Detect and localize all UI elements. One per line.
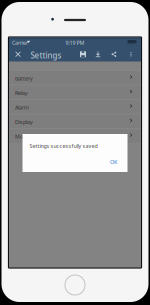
button[interactable]: Close (11, 47, 25, 61)
button[interactable]: Modem (9, 128, 141, 143)
staticText: Carrier (12, 39, 28, 46)
staticText: 9:19 PM (65, 39, 84, 46)
staticText: Display (15, 118, 33, 125)
staticText: Modem (15, 133, 34, 140)
staticText: Settings successfully saved (29, 142, 97, 150)
staticText: Settings (30, 50, 61, 61)
staticText: OK (110, 158, 117, 166)
button[interactable]: Share (107, 47, 121, 61)
staticText: Alarm (15, 104, 29, 111)
button[interactable]: Display (9, 114, 141, 128)
button[interactable]: Alarm (9, 99, 141, 114)
button[interactable]: Download (91, 47, 105, 61)
staticText: Relay (15, 89, 28, 96)
staticText: Battery (15, 75, 33, 82)
button[interactable]: More options (125, 47, 136, 61)
button[interactable]: Battery (9, 70, 141, 85)
button[interactable]: OK (106, 157, 120, 167)
button[interactable]: Relay (9, 85, 141, 99)
button[interactable]: Save (76, 47, 90, 61)
